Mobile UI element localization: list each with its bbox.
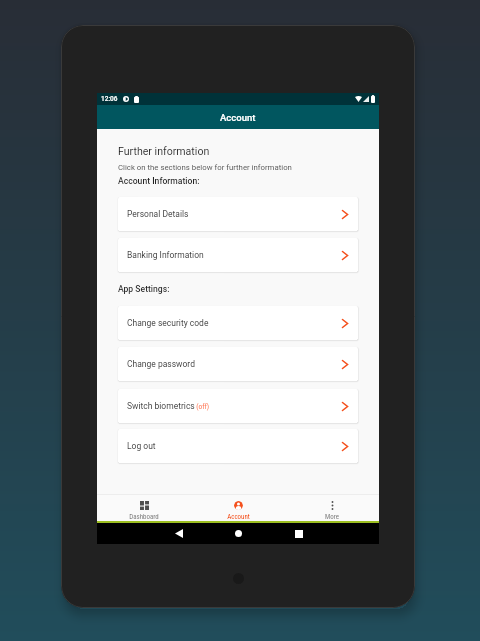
staticText: Account [227, 513, 250, 521]
staticText: Personal Details [127, 209, 189, 219]
button[interactable]: Change security code [118, 306, 358, 340]
button[interactable]: Dashboard [97, 495, 191, 521]
button[interactable]: Back [152, 523, 205, 544]
button[interactable]: Account [191, 495, 285, 521]
button[interactable]: Change password [118, 347, 358, 381]
staticText: 12:06 [101, 95, 118, 103]
button[interactable]: Home [205, 523, 272, 544]
staticText: Further information [118, 145, 210, 157]
staticText: Click on the sections below for further … [118, 163, 292, 172]
button[interactable]: Log out [118, 429, 358, 463]
staticText: Banking Information [127, 250, 204, 260]
staticText: Log out [127, 441, 156, 451]
button[interactable]: Switch biometrics (off) [118, 389, 358, 423]
button[interactable]: Personal Details [118, 197, 358, 231]
staticText: Change password [127, 359, 195, 369]
staticText: More [325, 513, 339, 521]
staticText: Change security code [127, 318, 209, 328]
staticText: Account [220, 112, 256, 123]
staticText: Dashboard [129, 513, 159, 521]
button[interactable]: Recent apps [272, 523, 325, 544]
button[interactable]: More [285, 495, 379, 521]
staticText: App Settings: [118, 284, 170, 294]
staticText: Account Information: [118, 176, 200, 186]
staticText: Switch biometrics (off) [127, 401, 210, 411]
button[interactable]: Banking Information [118, 238, 358, 272]
